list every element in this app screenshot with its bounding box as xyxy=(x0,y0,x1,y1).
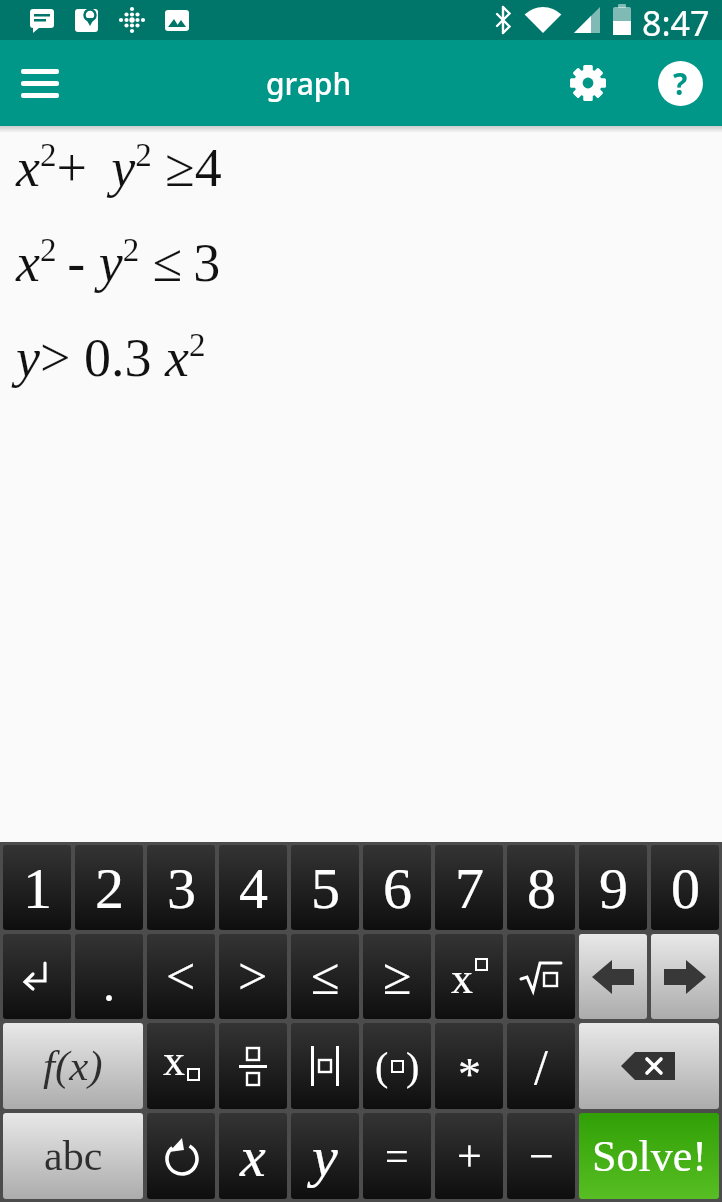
staticText: − xyxy=(529,1132,554,1181)
staticText: ≤ xyxy=(311,948,340,1006)
button[interactable] xyxy=(147,1113,215,1199)
staticText: * xyxy=(458,1049,481,1100)
button[interactable]: f(x) xyxy=(3,1023,143,1109)
staticText: y xyxy=(312,1124,338,1188)
button[interactable] xyxy=(219,1023,287,1109)
staticText: f(x) xyxy=(43,1042,103,1090)
button[interactable]: 7 xyxy=(435,845,503,930)
button[interactable] xyxy=(291,1023,359,1109)
button[interactable]: 6 xyxy=(363,845,431,930)
button[interactable]: − xyxy=(507,1113,575,1199)
staticText: 5 xyxy=(311,856,340,920)
button[interactable] xyxy=(538,40,638,126)
button[interactable]: Solve! xyxy=(579,1113,719,1199)
staticText: 8 xyxy=(527,856,556,920)
staticText: + xyxy=(457,1132,482,1181)
button[interactable]: . xyxy=(75,934,143,1019)
button[interactable]: ≥ xyxy=(363,934,431,1019)
staticText: > xyxy=(238,948,268,1006)
button[interactable]: 8 xyxy=(507,845,575,930)
button[interactable]: 4 xyxy=(219,845,287,930)
staticText: Solve! xyxy=(592,1132,707,1181)
button[interactable]: x xyxy=(219,1113,287,1199)
staticText: x2+ y2 ≥4 xyxy=(16,137,222,198)
staticText: 0 xyxy=(671,856,700,920)
button[interactable]: > xyxy=(219,934,287,1019)
button[interactable] xyxy=(0,40,80,126)
button[interactable]: 3 xyxy=(147,845,215,930)
button[interactable]: y xyxy=(291,1113,359,1199)
button[interactable]: + xyxy=(435,1113,503,1199)
staticText: x2 - y2 ≤ 3 xyxy=(16,232,221,293)
staticText: x xyxy=(240,1124,266,1188)
button[interactable]: 0 xyxy=(651,845,719,930)
staticText: 6 xyxy=(383,856,412,920)
button[interactable]: ≤ xyxy=(291,934,359,1019)
button[interactable]: x xyxy=(147,1023,215,1109)
button[interactable] xyxy=(579,1023,719,1109)
button[interactable]: = xyxy=(363,1113,431,1199)
staticText: abc xyxy=(44,1133,103,1180)
button[interactable]: ? xyxy=(638,40,722,126)
staticText: 4 xyxy=(239,856,268,920)
button[interactable]: 2 xyxy=(75,845,143,930)
button[interactable]: x xyxy=(435,934,503,1019)
staticText: < xyxy=(166,948,196,1006)
button[interactable] xyxy=(651,934,719,1019)
staticText: 8:47 xyxy=(642,0,710,40)
staticText: 2 xyxy=(95,856,124,920)
button[interactable] xyxy=(507,934,575,1019)
staticText: ? xyxy=(673,63,688,104)
button[interactable]: abc xyxy=(3,1113,143,1199)
staticText: . xyxy=(103,958,115,1011)
button[interactable]: * xyxy=(435,1023,503,1109)
staticText: ≥ xyxy=(383,948,412,1006)
button[interactable]: < xyxy=(147,934,215,1019)
button[interactable] xyxy=(579,934,647,1019)
staticText: ( xyxy=(375,1044,389,1088)
button[interactable]: 9 xyxy=(579,845,647,930)
button[interactable]: 1 xyxy=(3,845,71,930)
staticText: x xyxy=(163,1036,185,1085)
staticText: 3 xyxy=(167,856,196,920)
staticText: ) xyxy=(406,1044,420,1088)
button[interactable]: / xyxy=(507,1023,575,1109)
staticText: y> 0.3 x2 xyxy=(16,327,206,388)
staticText: / xyxy=(534,1039,548,1094)
button[interactable]: ( xyxy=(363,1023,431,1109)
staticText: 9 xyxy=(599,856,628,920)
staticText: = xyxy=(385,1133,409,1180)
staticText: 1 xyxy=(23,856,52,920)
staticText: graph xyxy=(266,63,352,104)
button[interactable]: 5 xyxy=(291,845,359,930)
button[interactable] xyxy=(3,934,71,1019)
staticText: 7 xyxy=(455,856,484,920)
staticText: x xyxy=(451,954,473,1003)
